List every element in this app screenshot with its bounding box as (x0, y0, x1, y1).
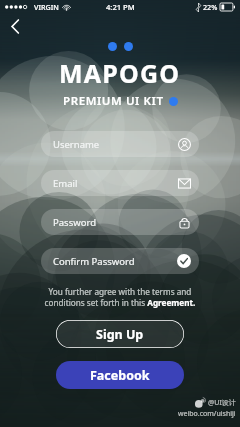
button[interactable]: Sign Up (56, 320, 184, 348)
button[interactable]: Facebook (56, 361, 184, 389)
staticText: 4:21 PM (106, 2, 135, 12)
staticText: PREMIUM UI KIT (63, 93, 164, 109)
staticText: Facebook (90, 367, 150, 384)
button[interactable]: Email (41, 170, 199, 196)
staticText: Password (53, 216, 96, 229)
staticText: weibo.com/uishiji (178, 409, 236, 419)
button[interactable]: Confirm Password (41, 248, 199, 274)
staticText: Email (53, 177, 78, 190)
button[interactable]: Username (41, 131, 199, 157)
button[interactable]: Back (4, 15, 26, 37)
button[interactable]: Password (41, 209, 199, 235)
staticText: Confirm Password (53, 255, 135, 268)
staticText: 22% (203, 2, 218, 12)
staticText: Sign Up (96, 326, 144, 343)
staticText: VIRGIN (34, 2, 59, 12)
staticText: You further agree with the terms and con… (32, 286, 208, 309)
staticText: Username (53, 138, 100, 151)
staticText: @UI设计 (208, 398, 236, 408)
button[interactable]: You further agree with the terms and con… (32, 286, 208, 309)
staticText: MAPOGO (59, 56, 181, 90)
